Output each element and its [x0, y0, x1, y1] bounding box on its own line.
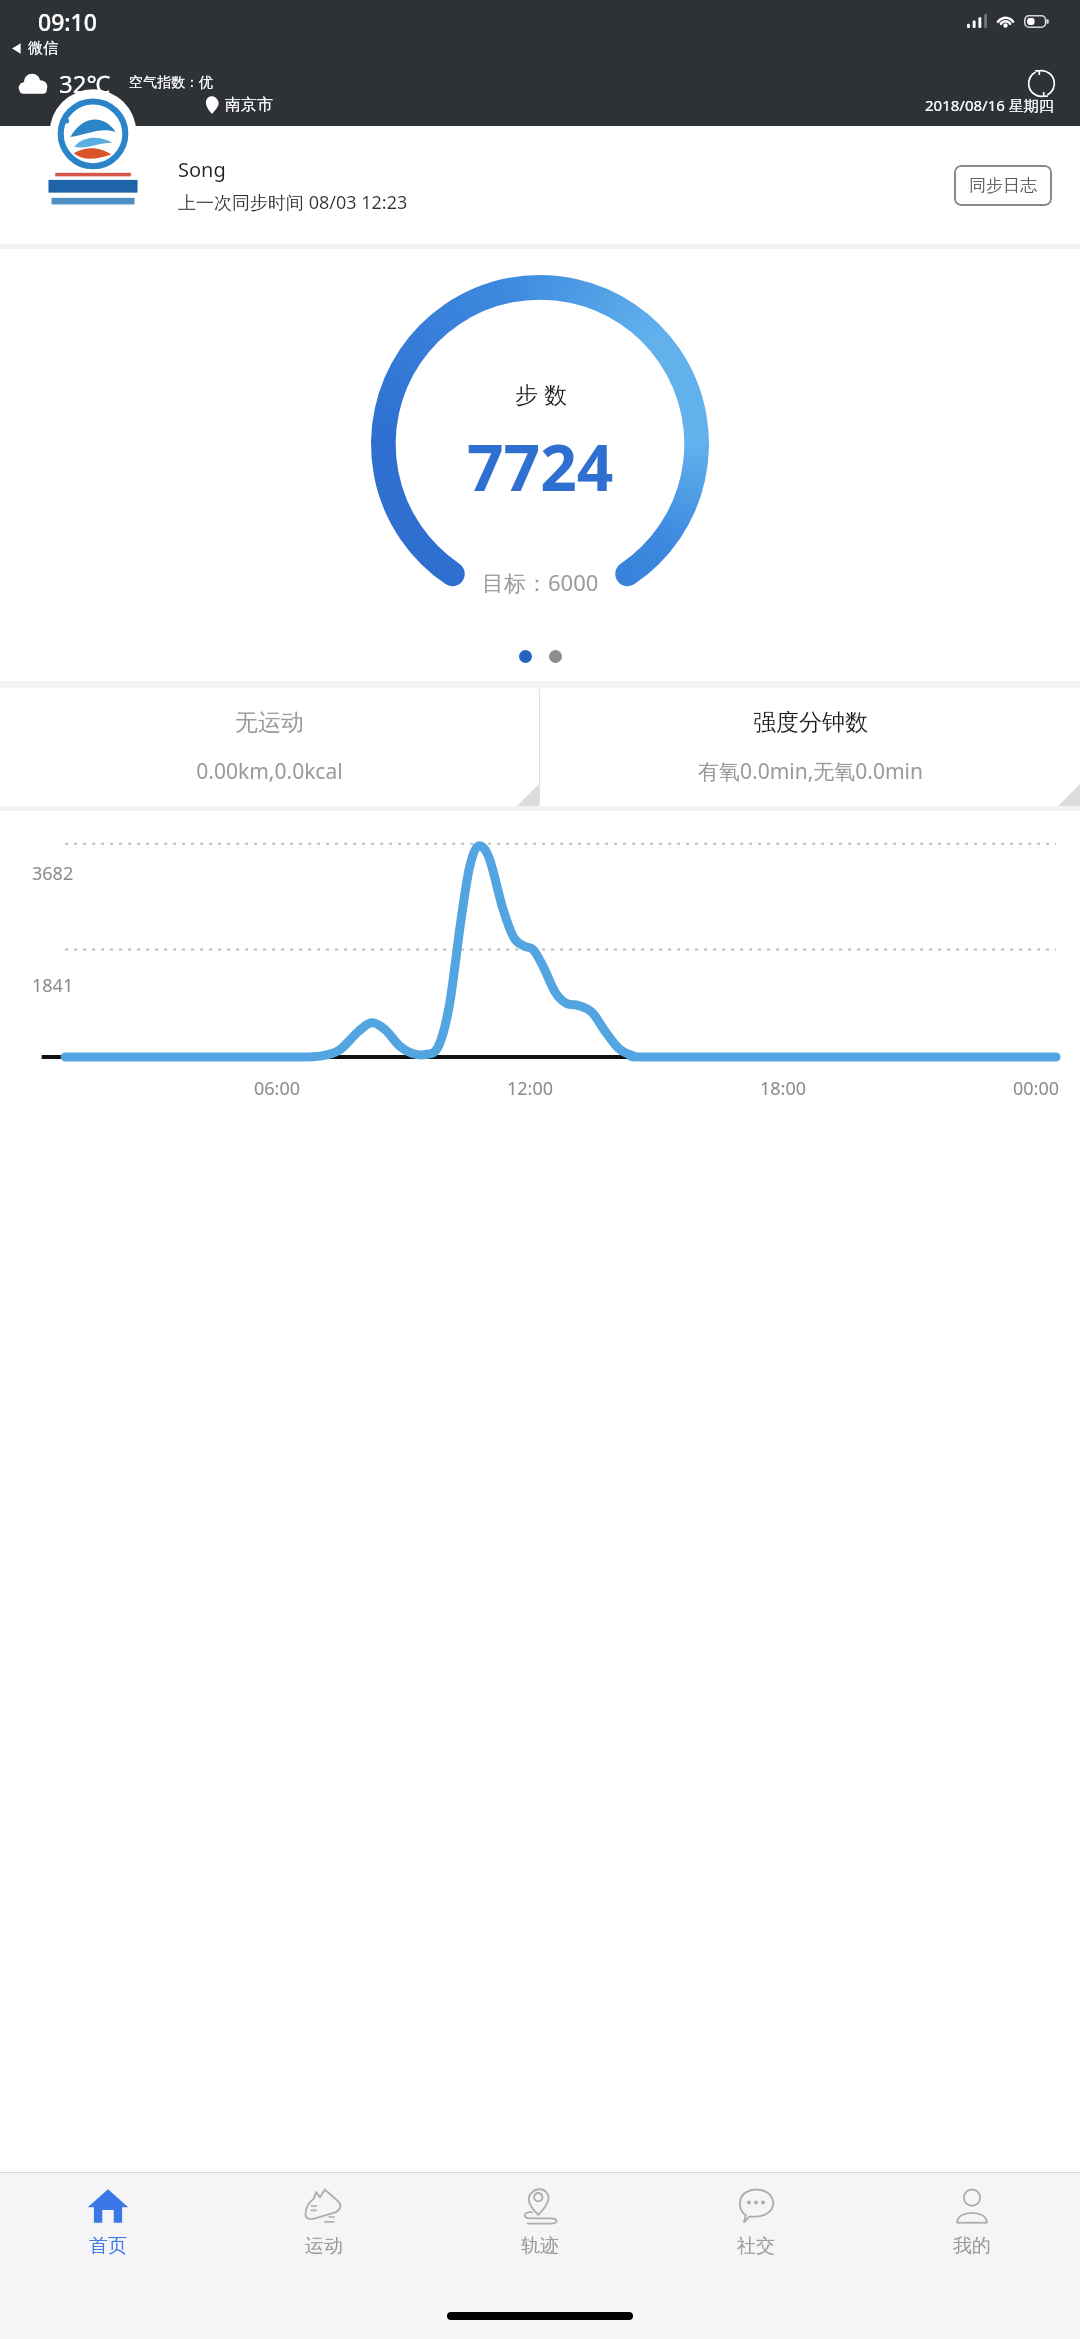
- staticText: 1841: [32, 973, 74, 998]
- button[interactable]: 强度分钟数: [540, 688, 1080, 806]
- staticText: 0.00km,0.0kcal: [196, 757, 343, 786]
- button[interactable]: 无运动: [0, 688, 539, 806]
- button[interactable]: Refresh: [1020, 62, 1062, 104]
- button[interactable]: 运动: [216, 2173, 432, 2277]
- button[interactable]: 3682: [0, 811, 1080, 1111]
- button[interactable]: Song Diving logo: [32, 102, 154, 220]
- button[interactable]: 轨迹: [432, 2173, 648, 2277]
- staticText: 南京市: [225, 95, 273, 115]
- staticText: 目标：6000: [482, 567, 599, 597]
- staticText: 轨迹: [521, 2234, 559, 2258]
- staticText: 7724: [467, 423, 614, 510]
- staticText: 3682: [32, 861, 74, 886]
- staticText: 有氧0.0min,无氧0.0min: [698, 757, 923, 786]
- staticText: 运动: [305, 2234, 343, 2258]
- staticText: 00:00: [1013, 1076, 1060, 1101]
- staticText: 同步日志: [969, 175, 1037, 196]
- staticText: 06:00: [254, 1076, 301, 1101]
- button[interactable]: 步 数: [371, 275, 709, 613]
- staticText: 空气指数：优: [129, 74, 213, 92]
- staticText: 12:00: [507, 1076, 554, 1101]
- staticText: 首页: [89, 2234, 127, 2258]
- staticText: 2018/08/16 星期四: [925, 95, 1054, 115]
- staticText: 强度分钟数: [753, 708, 868, 737]
- staticText: 09:10: [38, 6, 97, 37]
- staticText: 我的: [953, 2234, 991, 2258]
- button[interactable]: Page 2: [549, 650, 562, 663]
- button[interactable]: 我的: [864, 2173, 1080, 2277]
- button[interactable]: 首页: [0, 2173, 216, 2277]
- button[interactable]: Page 1: [519, 650, 532, 663]
- staticText: 32℃: [59, 67, 111, 100]
- button[interactable]: 社交: [648, 2173, 864, 2277]
- staticText: 步 数: [515, 378, 567, 409]
- staticText: 无运动: [235, 708, 304, 737]
- staticText: 18:00: [760, 1076, 807, 1101]
- staticText: 上一次同步时间 08/03 12:23: [178, 190, 408, 215]
- staticText: 微信: [28, 39, 58, 58]
- button[interactable]: 同步日志: [954, 165, 1052, 206]
- staticText: Song: [178, 156, 226, 183]
- button[interactable]: Back to WeChat: [7, 36, 61, 60]
- staticText: 社交: [737, 2234, 775, 2258]
